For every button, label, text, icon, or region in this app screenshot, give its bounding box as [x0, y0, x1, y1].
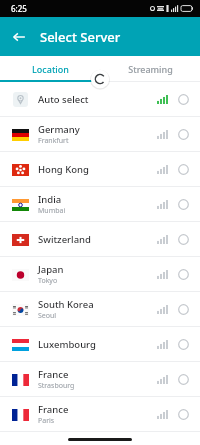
staticText: Hong Kong: [38, 163, 89, 176]
staticText: Auto select: [38, 93, 89, 106]
staticText: Select Server: [40, 28, 121, 46]
button[interactable]: Luxembourg: [0, 327, 200, 361]
staticText: Streaming: [128, 63, 173, 75]
staticText: Strasbourg: [38, 381, 75, 391]
button[interactable]: Streaming: [100, 56, 200, 82]
staticText: South Korea: [38, 298, 94, 311]
staticText: Location: [32, 63, 69, 75]
staticText: France: [38, 368, 69, 381]
button[interactable]: France: [0, 397, 200, 431]
staticText: 6:25: [11, 3, 27, 14]
button[interactable]: Back: [6, 24, 32, 50]
staticText: Luxembourg: [38, 338, 96, 351]
button[interactable]: Auto select: [0, 82, 200, 116]
other: Refreshing: [90, 69, 110, 89]
staticText: Seoul: [38, 311, 57, 321]
button[interactable]: Hong Kong: [0, 152, 200, 186]
staticText: Switzerland: [38, 233, 91, 246]
staticText: Germany: [38, 123, 80, 136]
button[interactable]: Japan: [0, 257, 200, 291]
button[interactable]: France: [0, 362, 200, 396]
staticText: Tokyo: [38, 276, 58, 286]
button[interactable]: India: [0, 187, 200, 221]
staticText: India: [38, 193, 62, 206]
button[interactable]: South Korea: [0, 292, 200, 326]
staticText: Paris: [38, 416, 55, 426]
staticText: Mumbai: [38, 206, 66, 216]
staticText: France: [38, 403, 69, 416]
staticText: Frankfurt: [38, 136, 69, 146]
button[interactable]: Switzerland: [0, 222, 200, 256]
staticText: Japan: [38, 263, 64, 276]
button[interactable]: Germany: [0, 117, 200, 151]
button[interactable]: Location: [0, 56, 100, 82]
